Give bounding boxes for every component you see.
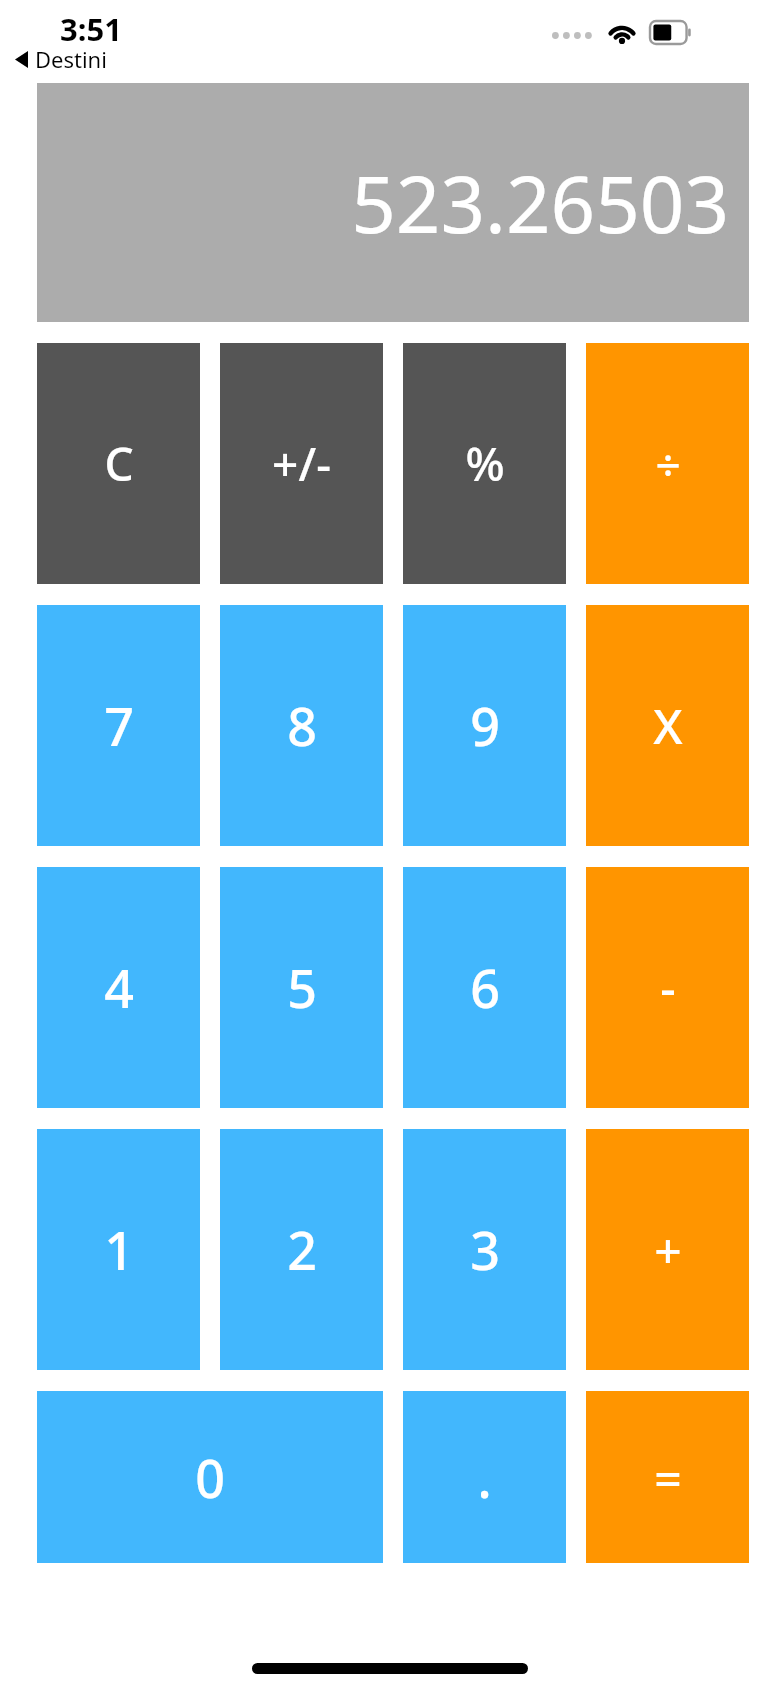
button[interactable]: Plus: [586, 1129, 749, 1370]
button[interactable]: Minus: [586, 867, 749, 1108]
button[interactable]: +/-: [220, 343, 383, 584]
staticText: X: [653, 693, 683, 758]
staticText: 4: [104, 952, 134, 1023]
button[interactable]: 8: [220, 605, 383, 846]
button[interactable]: 6: [403, 867, 566, 1108]
staticText: 7: [104, 690, 134, 761]
staticText: .: [477, 1442, 492, 1513]
staticText: -: [660, 955, 676, 1020]
staticText: C: [104, 432, 134, 495]
staticText: 3:51: [60, 8, 122, 50]
staticText: Destini: [35, 44, 107, 74]
staticText: 5: [287, 952, 317, 1023]
staticText: ÷: [655, 434, 681, 494]
staticText: 1: [104, 1214, 134, 1285]
staticText: 9: [470, 690, 500, 761]
button[interactable]: 4: [37, 867, 200, 1108]
staticText: +: [654, 1217, 682, 1282]
button[interactable]: 1: [37, 1129, 200, 1370]
button[interactable]: C: [37, 343, 200, 584]
button[interactable]: 9: [403, 605, 566, 846]
staticText: =: [654, 1445, 682, 1510]
button[interactable]: Multiply: [586, 605, 749, 846]
button[interactable]: .: [403, 1391, 566, 1563]
button[interactable]: 2: [220, 1129, 383, 1370]
staticText: 6: [470, 952, 500, 1023]
staticText: 8: [287, 690, 317, 761]
staticText: 2: [287, 1214, 317, 1285]
staticText: 0: [195, 1442, 225, 1513]
staticText: +/-: [272, 432, 331, 495]
button[interactable]: 3: [403, 1129, 566, 1370]
staticText: 523.26503: [351, 150, 729, 256]
button[interactable]: 7: [37, 605, 200, 846]
button[interactable]: Divide: [586, 343, 749, 584]
button[interactable]: Equals: [586, 1391, 749, 1563]
button[interactable]: 0: [37, 1391, 383, 1563]
button[interactable]: %: [403, 343, 566, 584]
button[interactable]: 5: [220, 867, 383, 1108]
staticText: %: [465, 432, 505, 495]
staticText: 3: [470, 1214, 500, 1285]
